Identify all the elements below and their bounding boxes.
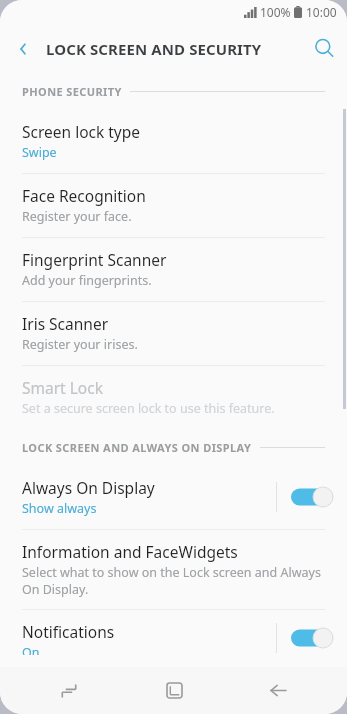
staticText: Always On Display [22,477,155,498]
staticText: Notifications [22,621,115,642]
button[interactable]: Home [139,667,209,714]
staticText: Fingerprint Scanner [22,249,167,270]
button[interactable]: Screen lock type [0,110,347,173]
button[interactable]: Smart Lock [0,366,347,429]
staticText: Select what to show on the Lock screen a… [22,564,321,597]
staticText: PHONE SECURITY [22,84,122,99]
staticText: Register your irises. [22,336,138,353]
button[interactable]: Toggle [291,628,333,648]
button[interactable]: Always On Display [0,466,347,529]
staticText: LOCK SCREEN AND SECURITY [46,39,262,59]
staticText: 10:00 [306,4,337,20]
staticText: 100% [260,4,291,20]
staticText: On [22,644,40,655]
staticText: Information and FaceWidgets [22,541,238,562]
staticText: Iris Scanner [22,313,109,334]
staticText: Smart Lock [22,377,103,398]
button[interactable]: Back [243,667,313,714]
button[interactable]: Back [0,24,46,73]
staticText: Register your face. [22,208,132,225]
button[interactable]: Toggle [291,487,333,507]
staticText: Face Recognition [22,185,146,206]
staticText: Show always [22,500,97,517]
button[interactable]: Information and FaceWidgets [0,530,347,609]
button[interactable]: Face Recognition [0,174,347,237]
staticText: Set a secure screen lock to use this fea… [22,400,275,417]
staticText: LOCK SCREEN AND ALWAYS ON DISPLAY [22,440,252,455]
staticText: Add your fingerprints. [22,272,152,289]
staticText: Screen lock type [22,121,141,142]
button[interactable]: Fingerprint Scanner [0,238,347,301]
button[interactable]: Notifications [0,610,347,667]
staticText: Swipe [22,144,57,161]
button[interactable]: Search [301,24,347,73]
button[interactable]: Recents [34,667,104,714]
button[interactable]: Iris Scanner [0,302,347,365]
